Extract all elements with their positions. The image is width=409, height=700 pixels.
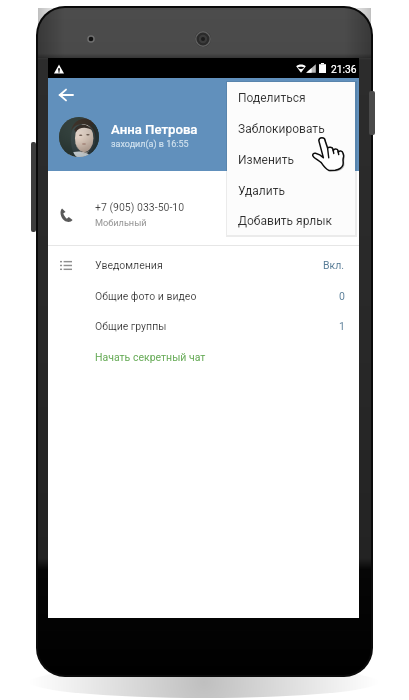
button[interactable]: Уведомления — [48, 249, 359, 280]
staticText: Заблокировать — [238, 122, 325, 136]
staticText: Анна Петрова — [111, 122, 198, 137]
staticText: +7 (905) 033-50-10 — [95, 201, 185, 213]
staticText: Вкл. — [323, 259, 345, 271]
button[interactable]: Удалить — [227, 175, 355, 206]
staticText: 21:36 — [331, 63, 357, 75]
staticText: Изменить — [238, 153, 295, 167]
button[interactable]: Заблокировать — [227, 113, 355, 144]
button[interactable]: Изменить — [227, 144, 355, 175]
button[interactable]: Начать секретный чат — [48, 341, 359, 372]
staticText: Удалить — [238, 184, 285, 198]
staticText: Мобильный — [95, 217, 147, 228]
staticText: Общие группы — [95, 320, 167, 332]
staticText: Общие фото и видео — [95, 290, 197, 302]
staticText: Добавить ярлык — [238, 214, 333, 228]
button[interactable]: Общие фото и видео — [48, 280, 359, 311]
button[interactable]: Back — [50, 79, 82, 111]
staticText: Поделиться — [238, 91, 306, 105]
staticText: Уведомления — [95, 259, 163, 271]
button[interactable]: Поделиться — [227, 82, 355, 113]
button[interactable]: Добавить ярлык — [227, 206, 355, 235]
staticText: 0 — [339, 290, 345, 302]
staticText: 1 — [339, 320, 345, 332]
staticText: Начать секретный чат — [95, 351, 206, 363]
button[interactable]: Общие группы — [48, 310, 359, 341]
staticText: заходил(а) в 16:55 — [111, 139, 189, 150]
button[interactable]: +7 (905) 033-50-10 — [48, 171, 359, 245]
